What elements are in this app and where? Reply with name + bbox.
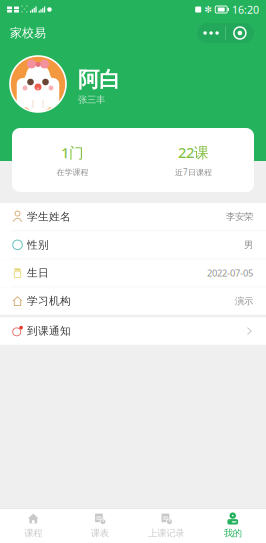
button[interactable]: More options [197,23,225,43]
staticText: 性别 [27,238,49,251]
staticText: 16:20 [232,2,259,17]
staticText: 学习机构 [27,294,71,308]
staticText: 到课通知 [27,324,71,338]
button[interactable]: Close mini program [226,23,254,43]
staticText: 1门 [61,143,84,162]
staticText: ✻ [204,4,212,15]
button[interactable]: 1门 [12,128,133,192]
staticText: 生日 [27,266,49,279]
staticText: 家校易 [10,26,46,40]
staticText: 课程 [24,527,42,539]
button[interactable]: 生日 [0,259,266,287]
button[interactable]: 上课记录 [133,509,199,543]
button[interactable]: 我的 [199,509,266,543]
button[interactable]: 性别 [0,231,266,259]
staticText: 男 [244,239,253,251]
button[interactable]: 学生姓名 [0,203,266,231]
staticText: 张三丰 [78,94,105,105]
button[interactable]: 课程 [0,509,66,543]
staticText: ⁙ [21,4,28,15]
staticText: 我的 [224,527,242,539]
button[interactable]: 22课 [133,128,254,192]
staticText: 2022-07-05 [207,267,253,279]
staticText: 课表 [91,527,109,539]
staticText: 阿白 [78,67,120,93]
staticText: 在学课程 [56,167,88,177]
button[interactable]: 学习机构 [0,287,266,315]
staticText: 演示 [235,295,253,307]
staticText: 22课 [178,142,209,162]
staticText: 李安荣 [226,211,253,222]
staticText: 上课记录 [148,527,184,539]
staticText: 近7日课程 [175,167,212,177]
button[interactable]: 课表 [66,509,133,543]
staticText: 学生姓名 [27,210,71,223]
button[interactable]: 到课通知 [0,317,266,345]
